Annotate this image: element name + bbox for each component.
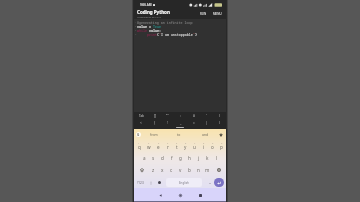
button[interactable]: h — [185, 152, 194, 164]
button[interactable]: [] — [148, 112, 161, 119]
staticText: True — [153, 24, 161, 28]
button[interactable]: n — [194, 164, 203, 176]
button[interactable]: Tab — [134, 112, 148, 119]
staticText: _ — [180, 121, 182, 125]
staticText: from — [150, 132, 158, 137]
staticText: # — [193, 114, 195, 118]
button[interactable]: Comma — [147, 178, 155, 187]
staticText: v — [179, 167, 182, 173]
staticText: : — [180, 114, 181, 118]
button[interactable]: = — [187, 119, 200, 126]
button[interactable]: s — [149, 152, 158, 164]
button[interactable]: Emoji — [155, 178, 163, 187]
button[interactable]: v — [176, 164, 185, 176]
staticText: ' — [206, 114, 207, 118]
button[interactable]: z — [149, 164, 158, 176]
button[interactable]: to — [166, 129, 192, 140]
button[interactable]: # — [187, 112, 200, 119]
button[interactable]: 5 — [172, 140, 181, 152]
staticText: ( — [219, 114, 220, 118]
button[interactable]: Google Search — [136, 132, 141, 137]
button[interactable]: : — [174, 112, 187, 119]
button[interactable]: 8 — [199, 140, 208, 152]
button[interactable]: 1 — [134, 140, 144, 152]
button[interactable]: Recent apps — [194, 189, 206, 201]
staticText: 2 — [135, 25, 137, 28]
staticText: d — [161, 155, 164, 161]
staticText: n — [197, 167, 200, 173]
staticText: y — [184, 144, 187, 150]
staticText: 7 — [194, 142, 196, 145]
button[interactable]: _ — [174, 119, 187, 126]
button[interactable]: ( — [213, 112, 226, 119]
staticText: MENU — [213, 12, 222, 16]
button[interactable]: b — [185, 164, 194, 176]
staticText: while — [137, 28, 147, 32]
button[interactable]: 7 — [190, 140, 199, 152]
button[interactable]: 3 — [154, 140, 163, 152]
button[interactable]: English — [166, 178, 202, 187]
button[interactable]: ! — [161, 119, 174, 126]
button[interactable]: Period — [206, 178, 213, 187]
button[interactable]: from — [141, 129, 166, 140]
button[interactable]: ?123 — [134, 178, 147, 187]
button[interactable]: c — [167, 164, 176, 176]
staticText: l — [216, 155, 218, 161]
staticText: j — [198, 155, 200, 161]
staticText: RUN — [200, 12, 207, 16]
staticText: s — [152, 155, 155, 161]
button[interactable]: Expand suggestions — [218, 132, 224, 138]
staticText: ) — [195, 32, 197, 36]
button[interactable]: Shift — [134, 164, 149, 176]
staticText: 3 — [158, 142, 160, 145]
button[interactable]: x — [158, 164, 167, 176]
button[interactable]: < — [134, 119, 148, 126]
button[interactable]: | — [200, 119, 213, 126]
staticText: " — [159, 32, 161, 36]
staticText: value — [137, 24, 147, 28]
button[interactable]: l — [212, 152, 221, 164]
staticText: = — [193, 121, 195, 125]
button[interactable]: ) — [213, 119, 226, 126]
staticText: = — [147, 24, 153, 28]
button[interactable]: 9 — [208, 140, 217, 152]
button[interactable]: d — [158, 152, 167, 164]
button[interactable]: and — [192, 129, 218, 140]
staticText: to — [177, 132, 181, 137]
staticText: 2 — [148, 142, 150, 145]
button[interactable]: m — [203, 164, 212, 176]
button[interactable]: f — [167, 152, 176, 164]
staticText: 3 — [135, 29, 137, 32]
staticText: ( — [157, 32, 159, 36]
button[interactable]: RUN — [198, 10, 209, 18]
staticText: < — [140, 121, 142, 125]
button[interactable]: Enter — [214, 178, 224, 187]
staticText: a — [143, 155, 146, 161]
staticText: w — [147, 144, 151, 150]
button[interactable]: Backspace — [212, 164, 226, 176]
staticText: : — [159, 28, 161, 32]
button[interactable]: 6 — [181, 140, 190, 152]
button[interactable]: Back — [154, 189, 166, 201]
button[interactable]: 2 — [144, 140, 154, 152]
staticText: 8 — [203, 142, 205, 145]
staticText: ! — [167, 121, 168, 125]
button[interactable]: 0 — [217, 140, 226, 152]
button[interactable]: k — [203, 152, 212, 164]
button[interactable]: { — [148, 119, 161, 126]
staticText: 5 — [176, 142, 178, 145]
staticText: Tab — [139, 114, 144, 118]
staticText: [] — [154, 114, 156, 118]
staticText: Coding Python — [137, 9, 170, 15]
staticText: "" — [166, 114, 169, 118]
button[interactable]: j — [194, 152, 203, 164]
button[interactable]: "" — [161, 112, 174, 119]
button[interactable]: g — [176, 152, 185, 164]
button[interactable]: 4 — [163, 140, 172, 152]
button[interactable]: Home — [174, 189, 186, 201]
button[interactable]: a — [140, 152, 149, 164]
staticText: 6 — [185, 142, 187, 145]
button[interactable]: MENU — [211, 10, 224, 18]
button[interactable]: ' — [200, 112, 213, 119]
